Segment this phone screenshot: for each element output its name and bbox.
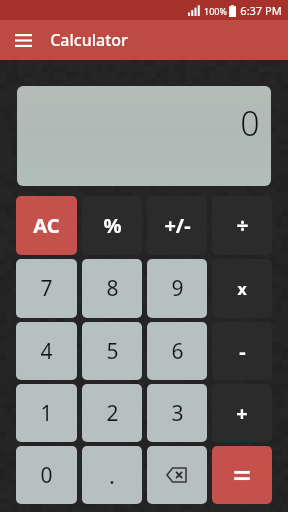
staticText: 6 — [171, 337, 184, 366]
button[interactable]: 0 — [17, 86, 271, 186]
staticText: 4 — [40, 337, 53, 366]
staticText: 0 — [240, 100, 260, 146]
staticText: AC — [33, 212, 60, 239]
button[interactable]: 6 — [147, 322, 207, 380]
button[interactable]: ÷ — [212, 196, 272, 255]
staticText: - — [239, 338, 246, 365]
staticText: x — [237, 278, 247, 300]
button[interactable]: 4 — [16, 322, 77, 380]
staticText: % — [103, 212, 122, 239]
staticText: + — [236, 400, 248, 427]
staticText: 2 — [106, 399, 119, 428]
button[interactable]: +/- — [147, 196, 207, 255]
button[interactable]: % — [82, 196, 142, 255]
staticText: 5 — [106, 337, 119, 366]
staticText: 100% — [204, 5, 227, 17]
button[interactable]: 1 — [16, 384, 77, 442]
staticText: 9 — [171, 274, 184, 303]
button[interactable]: 3 — [147, 384, 207, 442]
staticText: 7 — [40, 274, 53, 303]
button[interactable]: 2 — [82, 384, 142, 442]
button[interactable]: 0 — [16, 446, 77, 504]
button[interactable]: . — [82, 446, 142, 504]
staticText: ÷ — [236, 211, 249, 240]
staticText: 3 — [171, 399, 184, 428]
button[interactable]: 9 — [147, 259, 207, 318]
staticText: Calculator — [50, 29, 128, 51]
staticText: 0 — [40, 461, 53, 490]
button[interactable]: + — [212, 384, 272, 442]
button[interactable]: AC — [16, 196, 77, 255]
staticText: 6:37 PM — [240, 3, 282, 18]
staticText: 8 — [106, 274, 119, 303]
button[interactable]: 8 — [82, 259, 142, 318]
button[interactable]: x — [212, 259, 272, 318]
button[interactable]: - — [212, 322, 272, 380]
button[interactable]: Open navigation menu — [10, 27, 36, 53]
button[interactable]: Equals — [212, 446, 272, 504]
staticText: 1 — [40, 399, 53, 428]
staticText: . — [109, 460, 115, 490]
button[interactable]: 7 — [16, 259, 77, 318]
button[interactable]: Delete — [147, 446, 207, 504]
button[interactable]: 5 — [82, 322, 142, 380]
staticText: +/- — [164, 212, 191, 239]
